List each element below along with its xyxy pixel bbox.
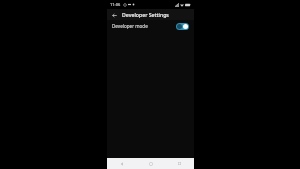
- button[interactable]: Home: [136, 158, 165, 169]
- staticText: Developer mode: [112, 23, 148, 29]
- button[interactable]: Developer mode toggle: [176, 23, 189, 30]
- staticText: Developer Settings: [122, 11, 169, 18]
- button[interactable]: Developer mode: [107, 20, 194, 32]
- button[interactable]: Back: [110, 11, 118, 19]
- button[interactable]: Recent apps: [165, 158, 194, 169]
- staticText: 11:06: [110, 2, 121, 7]
- button[interactable]: Back: [107, 158, 136, 169]
